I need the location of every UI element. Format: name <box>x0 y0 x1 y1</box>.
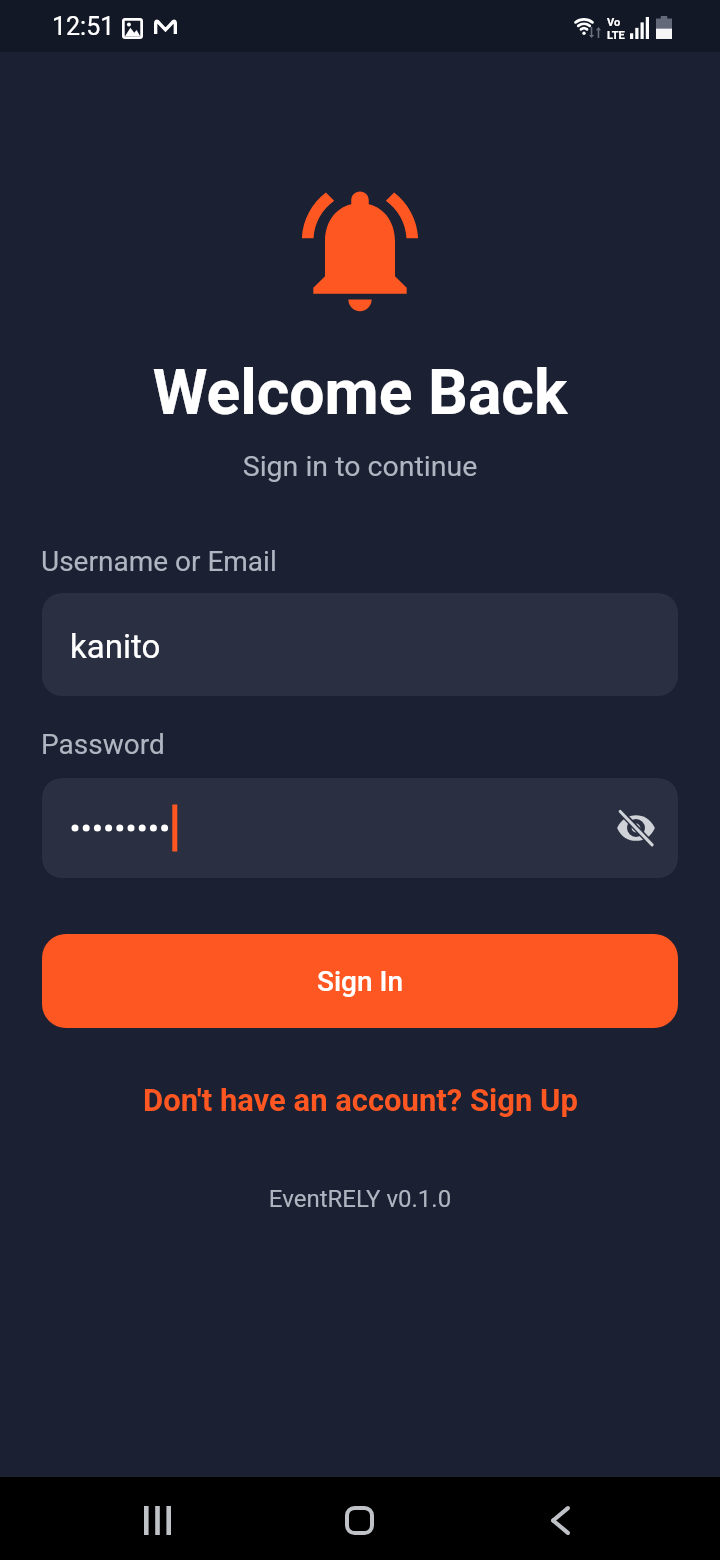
button[interactable]: Back <box>520 1480 601 1560</box>
button[interactable]: Show password <box>593 785 678 871</box>
staticText: Username or Email <box>41 545 277 578</box>
button[interactable]: kanito <box>42 593 678 696</box>
staticText: Password <box>41 728 165 761</box>
staticText: Welcome Back <box>0 356 720 429</box>
button[interactable]: Sign In <box>42 934 678 1028</box>
button[interactable]: Show password <box>42 778 678 878</box>
staticText: EventRELY v0.1.0 <box>0 1185 720 1213</box>
staticText: Sign in to continue <box>0 450 720 483</box>
staticText: Don't have an account? Sign Up <box>143 1082 578 1118</box>
staticText: Vo <box>607 16 621 29</box>
staticText: 12:51 <box>52 12 115 41</box>
button[interactable]: Recents <box>117 1480 198 1560</box>
staticText: LTE <box>607 29 625 42</box>
staticText: kanito <box>70 627 161 666</box>
staticText: Sign In <box>317 965 404 998</box>
button[interactable]: Home <box>319 1480 400 1560</box>
button[interactable]: Don't have an account? Sign Up <box>133 1078 588 1122</box>
